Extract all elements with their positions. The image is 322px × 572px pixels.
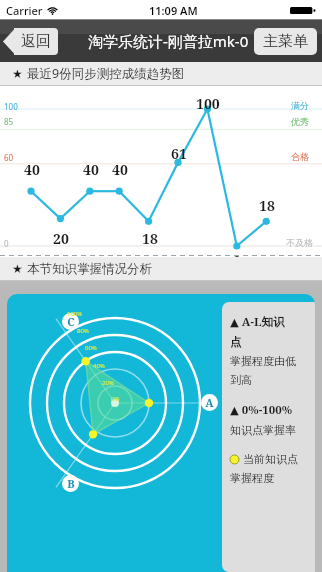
staticText: ★ <box>12 67 23 81</box>
staticText: 20 <box>53 229 69 248</box>
staticText: 100 <box>4 101 18 112</box>
staticText: 40 <box>83 160 99 179</box>
staticText: 掌握程度由低 <box>230 354 296 368</box>
staticText: 0% <box>111 395 120 403</box>
staticText: 淘学乐统计-刚普拉mk-0 <box>88 31 249 51</box>
staticText: 100% <box>67 310 83 318</box>
staticText: 不及格 <box>286 237 313 248</box>
staticText: 到高 <box>230 373 252 387</box>
staticText: 85 <box>4 116 14 127</box>
staticText: 0 <box>233 251 241 270</box>
staticText: 返回 <box>21 32 51 51</box>
button[interactable]: 返回 <box>3 28 58 55</box>
staticText: ▲ 0%-100% <box>230 402 293 418</box>
staticText: 80% <box>77 327 89 335</box>
staticText: A <box>205 395 214 410</box>
staticText: 60% <box>85 344 97 352</box>
staticText: 0 <box>4 238 9 249</box>
staticText: 20% <box>102 379 114 387</box>
button[interactable]: Axis B <box>62 475 79 492</box>
staticText: 60 <box>4 152 14 163</box>
staticText: ★ <box>12 262 23 276</box>
staticText: Carrier <box>6 3 43 18</box>
staticText: 61 <box>171 144 187 163</box>
staticText: 优秀 <box>291 116 309 127</box>
staticText: 知识点掌握率 <box>230 423 296 437</box>
staticText: 18 <box>142 229 158 248</box>
staticText: 合格 <box>291 151 309 162</box>
button[interactable]: Axis C <box>62 313 79 330</box>
staticText: 18 <box>259 196 275 215</box>
staticText: 40 <box>24 160 40 179</box>
staticText: 满分 <box>291 100 309 111</box>
staticText: 掌握程度 <box>230 471 274 485</box>
staticText: 最近9份同步测控成绩趋势图 <box>27 65 185 82</box>
staticText: 40% <box>93 362 105 370</box>
button[interactable]: 主菜单 <box>254 28 317 55</box>
button[interactable]: Axis A <box>201 394 218 411</box>
staticText: 当前知识点 <box>243 452 298 466</box>
staticText: 40 <box>112 160 128 179</box>
staticText: 本节知识掌握情况分析 <box>27 261 152 277</box>
staticText: 主菜单 <box>263 32 308 51</box>
staticText: 11:09 AM <box>149 3 198 18</box>
staticText: C <box>67 314 75 329</box>
staticText: ▲ A-L知识 <box>230 314 285 330</box>
staticText: B <box>67 476 75 491</box>
staticText: 100 <box>196 94 220 113</box>
staticText: 点 <box>230 335 242 349</box>
